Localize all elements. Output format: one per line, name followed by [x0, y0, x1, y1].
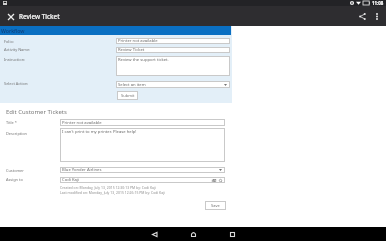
- button[interactable]: Back: [135, 227, 174, 241]
- staticText: Save: [211, 203, 220, 208]
- button[interactable]: Save: [205, 201, 226, 210]
- staticText: Title *: [6, 120, 17, 125]
- button[interactable]: Share: [354, 8, 370, 24]
- button[interactable]: Review the support ticket.: [116, 56, 230, 76]
- button[interactable]: Printer not available: [116, 38, 230, 44]
- button[interactable]: Home: [174, 227, 213, 241]
- button[interactable]: Select an item: [116, 81, 230, 88]
- button[interactable]: I can't print to my printer. Please help…: [60, 128, 225, 162]
- button[interactable]: Blue Yonder Airlines: [60, 167, 225, 173]
- staticText: 11:08: [372, 0, 384, 6]
- button[interactable]: Search people: [218, 178, 223, 183]
- staticText: Select Action:: [4, 81, 29, 86]
- button[interactable]: Printer not available: [60, 119, 225, 126]
- staticText: Codi Kaji: [62, 177, 80, 183]
- staticText: Printer not available: [118, 38, 158, 44]
- staticText: Workflow: [1, 27, 25, 34]
- staticText: Printer not available: [62, 120, 102, 126]
- staticText: I can't print to my printer. Please help…: [62, 129, 137, 135]
- button[interactable]: Close: [3, 9, 18, 24]
- staticText: Assign to: [6, 177, 23, 182]
- staticText: Select an item: [118, 82, 146, 88]
- staticText: Activity Name:: [4, 47, 31, 52]
- button[interactable]: More options: [370, 9, 384, 23]
- button[interactable]: Submit: [117, 91, 138, 100]
- staticText: Edit Customer Tickets: [6, 108, 67, 116]
- staticText: Instruction:: [4, 57, 26, 62]
- staticText: Review the support ticket.: [118, 57, 169, 63]
- staticText: Blue Yonder Airlines: [62, 167, 102, 173]
- staticText: Review Ticket: [19, 12, 60, 21]
- staticText: Last modified on: Monday, July 13, 2015 …: [60, 190, 165, 195]
- staticText: Created on: Monday, July 13, 2015 12:30:…: [60, 185, 156, 190]
- staticText: Submit: [121, 93, 135, 98]
- staticText: Folio:: [4, 39, 14, 44]
- button[interactable]: Codi Kaji: [60, 177, 225, 183]
- staticText: Review Ticket: [118, 47, 145, 53]
- button[interactable]: Recent apps: [213, 227, 252, 241]
- button[interactable]: Review Ticket: [116, 47, 230, 53]
- staticText: Description: [6, 131, 27, 136]
- button[interactable]: Select people: [211, 178, 216, 183]
- staticText: Customer: [6, 168, 24, 173]
